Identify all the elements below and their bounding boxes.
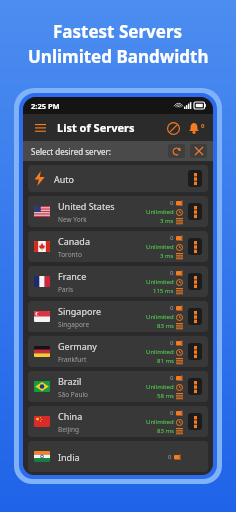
button[interactable]: India — [28, 441, 208, 472]
staticText: Singapore — [58, 320, 90, 329]
button[interactable]: Refresh — [168, 144, 185, 158]
button[interactable]: More options — [188, 273, 202, 290]
staticText: Unlimited — [146, 418, 174, 426]
button[interactable]: Menu — [31, 119, 49, 137]
button[interactable]: More options — [188, 203, 202, 220]
button[interactable]: More options — [188, 238, 202, 255]
staticText: 81 ms — [157, 357, 174, 365]
staticText: Brazil — [58, 375, 82, 387]
button[interactable]: Disconnect — [164, 119, 182, 137]
staticText: 0 — [170, 304, 174, 312]
staticText: Unlimited — [146, 383, 174, 391]
staticText: 0 — [170, 269, 174, 277]
staticText: Unlimited — [146, 243, 174, 251]
staticText: Paris — [58, 285, 74, 294]
button[interactable]: Notifications — [188, 122, 205, 134]
staticText: Select desired server: — [31, 146, 111, 157]
button[interactable]: Germany — [28, 336, 208, 367]
staticText: France — [58, 270, 87, 282]
staticText: India — [58, 451, 80, 463]
button[interactable]: China — [28, 406, 208, 437]
staticText: Germany — [58, 340, 97, 352]
staticText: Unlimited — [146, 278, 174, 286]
staticText: Fastest Servers — [53, 20, 183, 43]
button[interactable]: More options — [188, 343, 202, 360]
staticText: Unlimited — [146, 313, 174, 321]
button[interactable]: More options — [188, 413, 202, 430]
staticText: Auto — [54, 173, 75, 185]
staticText: China — [58, 410, 83, 422]
staticText: Frankfurt — [58, 355, 87, 364]
button[interactable]: Brazil — [28, 371, 208, 402]
staticText: Canada — [58, 235, 90, 247]
button[interactable]: More options — [188, 378, 202, 395]
staticText: New York — [58, 215, 87, 224]
staticText: São Paulo — [58, 390, 89, 399]
staticText: 115 ms — [153, 287, 174, 295]
staticText: United States — [58, 200, 115, 212]
staticText: Unlimited Bandwidth — [28, 45, 209, 68]
staticText: Beijing — [58, 425, 79, 434]
staticText: List of Servers — [57, 120, 135, 135]
button[interactable]: Singapore — [28, 301, 208, 332]
button[interactable]: Canada — [28, 231, 208, 262]
button[interactable]: Close — [190, 144, 207, 158]
staticText: 0 — [201, 122, 205, 130]
staticText: 3 ms — [160, 252, 174, 260]
button[interactable]: France — [28, 266, 208, 297]
staticText: 58 ms — [157, 392, 174, 400]
button[interactable]: Auto — [28, 165, 208, 192]
button[interactable]: More options — [188, 170, 202, 187]
button[interactable]: More options — [188, 308, 202, 325]
button[interactable]: United States — [28, 196, 208, 227]
staticText: 83 ms — [157, 427, 174, 435]
staticText: Toronto — [58, 250, 82, 259]
staticText: Singapore — [58, 305, 102, 317]
staticText: 0 — [170, 199, 174, 207]
staticText: 3 ms — [160, 217, 174, 225]
staticText: Unlimited — [146, 208, 174, 216]
staticText: 0 — [170, 374, 174, 382]
staticText: Unlimited — [146, 348, 174, 356]
staticText: 0 — [170, 409, 174, 417]
staticText: 0 — [170, 339, 174, 347]
staticText: 0 — [170, 234, 174, 242]
staticText: 83 ms — [157, 322, 174, 330]
staticText: 0 — [168, 453, 172, 461]
staticText: 2:25 PM — [31, 101, 60, 111]
